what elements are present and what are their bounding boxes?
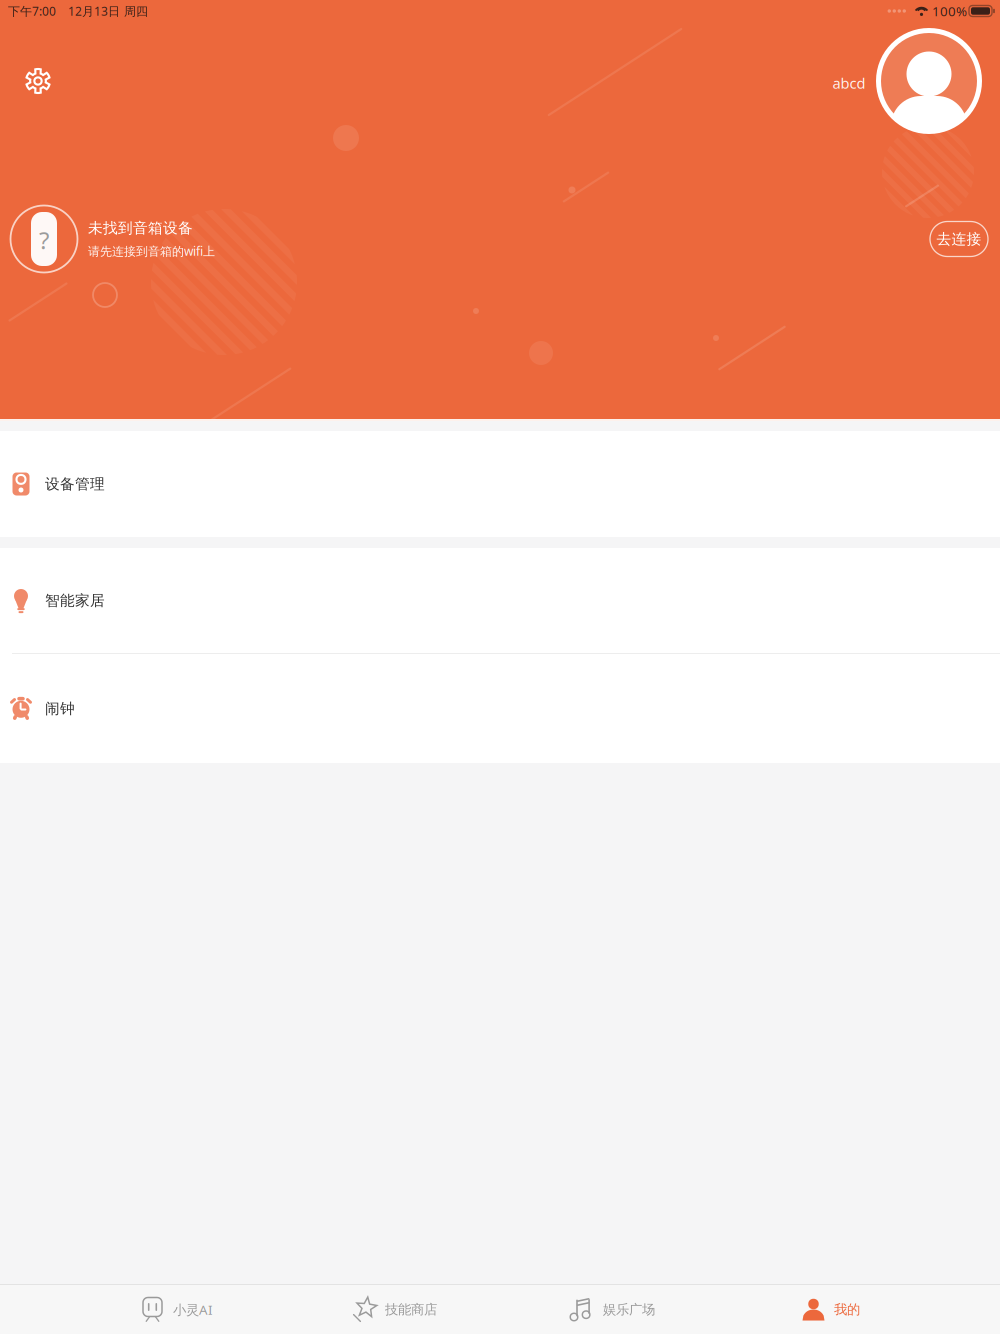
staticText: ?: [39, 224, 49, 256]
staticText: 闹钟: [45, 699, 75, 717]
button[interactable]: 设置: [11, 54, 65, 108]
staticText: 设备管理: [45, 475, 105, 493]
staticText: 100%: [932, 2, 967, 20]
staticText: 未找到音箱设备: [88, 219, 193, 237]
button[interactable]: 智能家居: [0, 548, 1000, 653]
staticText: 下午7:00: [8, 3, 56, 19]
staticText: 技能商店: [385, 1301, 437, 1318]
button[interactable]: 个人中心: [873, 25, 985, 137]
button[interactable]: 我的: [722, 1285, 940, 1334]
staticText: 娱乐广场: [603, 1301, 655, 1318]
button[interactable]: 小灵AI: [68, 1285, 286, 1334]
staticText: 12月13日 周四: [68, 3, 148, 19]
button[interactable]: 技能商店: [286, 1285, 504, 1334]
staticText: 我的: [834, 1301, 860, 1318]
button[interactable]: 闹钟: [0, 654, 1000, 763]
staticText: abcd: [832, 73, 865, 93]
staticText: 去连接: [936, 230, 981, 248]
staticText: 小灵AI: [173, 1301, 213, 1318]
staticText: 智能家居: [45, 591, 105, 609]
button[interactable]: 娱乐广场: [504, 1285, 722, 1334]
staticText: 请先连接到音箱的wifi上: [88, 243, 215, 259]
button[interactable]: 去连接: [930, 221, 988, 256]
button[interactable]: 设备管理: [0, 431, 1000, 537]
